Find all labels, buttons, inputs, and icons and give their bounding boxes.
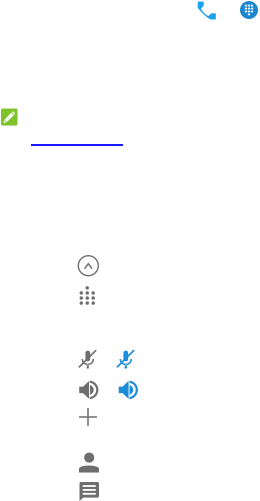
button[interactable]: Keypad bbox=[78, 286, 96, 305]
button[interactable]: Compose bbox=[1, 108, 17, 125]
button[interactable]: Mute bbox=[78, 349, 97, 368]
button[interactable]: Muted bbox=[116, 349, 135, 368]
button[interactable]: Call bbox=[197, 1, 216, 20]
button[interactable]: Add call bbox=[79, 408, 97, 426]
button[interactable]: Expand bbox=[78, 256, 98, 276]
button[interactable]: Message bbox=[79, 482, 99, 501]
button[interactable]: Contacts bbox=[79, 452, 99, 472]
button[interactable]: Speaker bbox=[79, 380, 98, 399]
button[interactable]: Dial pad bbox=[240, 1, 258, 19]
button[interactable]: Speaker on bbox=[119, 380, 138, 399]
